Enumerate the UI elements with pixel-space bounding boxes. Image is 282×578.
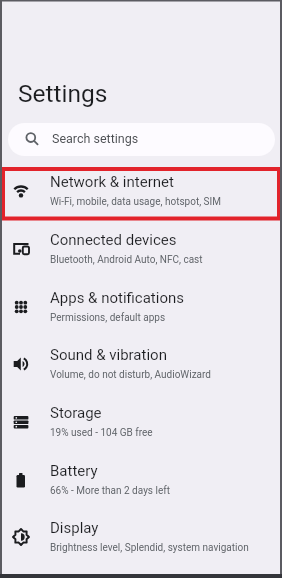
staticText: 66% - More than 2 days left	[50, 485, 170, 497]
staticText: Network & internet	[50, 173, 174, 191]
staticText: Apps & notifications	[50, 289, 184, 307]
button[interactable]: Storage	[0, 393, 282, 451]
staticText: Connected devices	[50, 231, 177, 249]
button[interactable]: Battery	[0, 451, 282, 509]
staticText: Battery	[50, 462, 98, 480]
button[interactable]: Network & internet	[0, 162, 282, 220]
staticText: Storage	[50, 404, 102, 422]
staticText: Search settings	[52, 131, 139, 146]
button[interactable]: Sound & vibration	[0, 335, 282, 393]
button[interactable]: Display	[0, 508, 282, 566]
staticText: Display	[50, 519, 99, 537]
staticText: Permissions, default apps	[50, 312, 166, 324]
button[interactable]: Connected devices	[0, 220, 282, 278]
staticText: Brightness level, Splendid, system navig…	[50, 542, 249, 554]
button[interactable]: Apps & notifications	[0, 278, 282, 336]
staticText: Volume, do not disturb, AudioWizard	[50, 369, 211, 381]
button[interactable]: Search settings	[8, 123, 275, 156]
staticText: Sound & vibration	[50, 346, 167, 364]
staticText: Bluetooth, Android Auto, NFC, cast	[50, 254, 203, 266]
staticText: Settings	[18, 79, 108, 108]
staticText: Wi-Fi, mobile, data usage, hotspot, SIM	[50, 196, 221, 208]
staticText: 19% used - 104 GB free	[50, 427, 153, 439]
